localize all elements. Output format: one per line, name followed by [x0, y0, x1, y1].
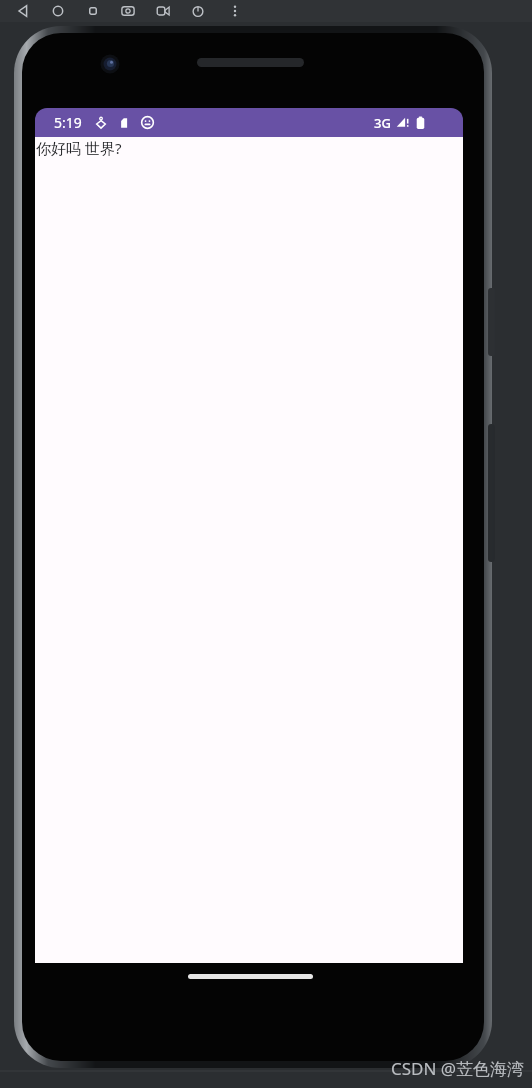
button[interactable]: Rotate — [189, 2, 207, 20]
button[interactable]: Home — [49, 2, 67, 20]
staticText: CSDN @苙色海湾 — [391, 1057, 525, 1080]
button[interactable]: Record screen — [154, 2, 172, 20]
button[interactable]: Screenshot — [119, 2, 137, 20]
staticText: 你好吗 世界? — [36, 138, 122, 158]
staticText: 5:19 — [54, 113, 82, 132]
button[interactable]: Overview — [84, 2, 102, 20]
button[interactable]: More options — [226, 2, 244, 20]
staticText: 3G — [374, 114, 391, 132]
button[interactable]: Back — [14, 2, 32, 20]
